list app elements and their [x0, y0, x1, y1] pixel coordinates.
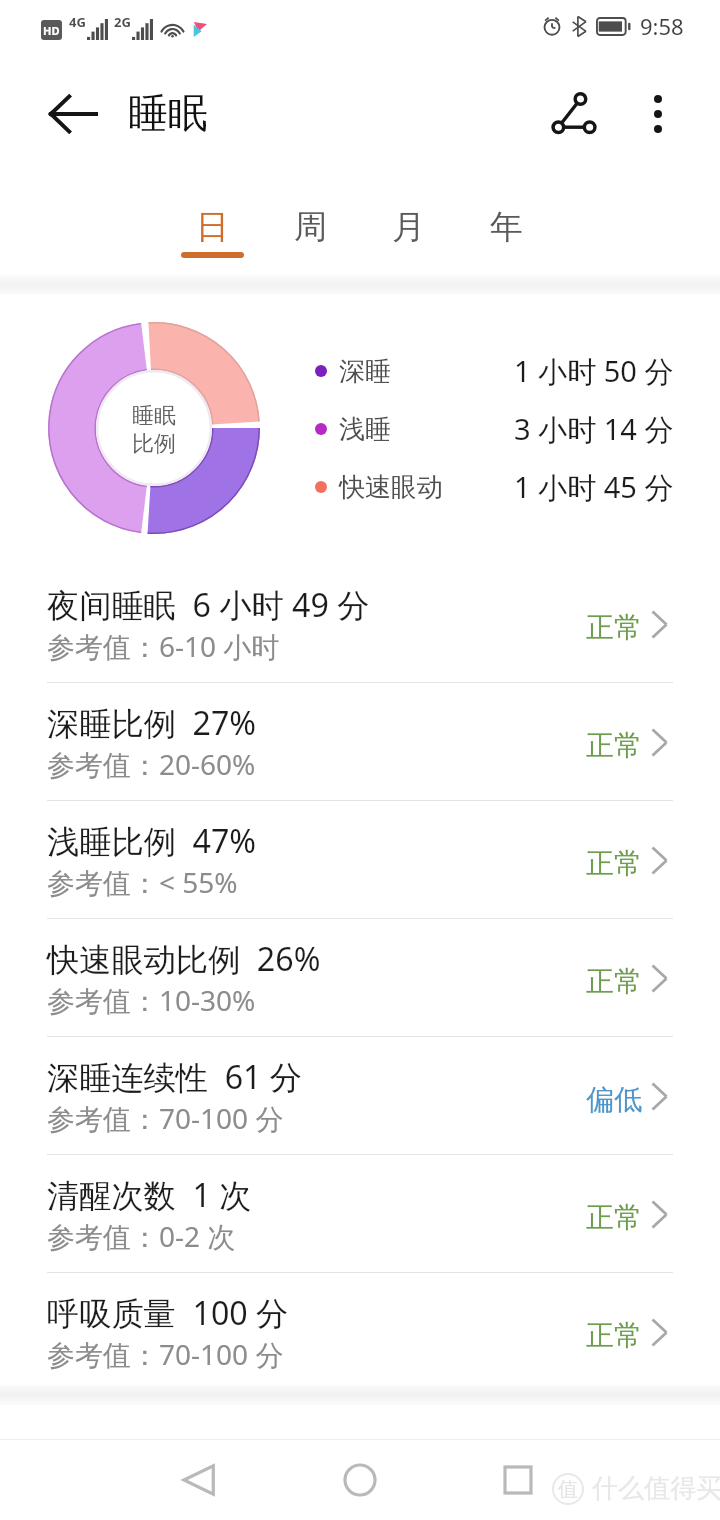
- staticText: 正常: [586, 610, 642, 645]
- staticText: 快速眼动比例 26%: [47, 937, 321, 981]
- staticText: 参考值：< 55%: [47, 863, 238, 901]
- staticText: 偏低: [586, 1082, 642, 1117]
- staticText: 快速眼动: [339, 471, 443, 504]
- button[interactable]: 呼吸质量 100 分: [0, 1273, 720, 1391]
- staticText: 月: [392, 206, 425, 248]
- button[interactable]: 浅睡比例 47%: [0, 801, 720, 919]
- button[interactable]: Back: [171, 1452, 227, 1508]
- button[interactable]: 深睡连续性 61 分: [0, 1037, 720, 1155]
- staticText: 呼吸质量 100 分: [47, 1291, 289, 1335]
- button[interactable]: 快速眼动比例 26%: [0, 919, 720, 1037]
- staticText: 深睡连续性 61 分: [47, 1055, 303, 1099]
- button[interactable]: 深睡比例 27%: [0, 683, 720, 801]
- staticText: 正常: [586, 1200, 642, 1235]
- staticText: 2G: [114, 13, 131, 31]
- button[interactable]: 夜间睡眠 6 小时 49 分: [0, 565, 720, 683]
- staticText: 浅睡比例 47%: [47, 819, 257, 863]
- staticText: 比例: [132, 430, 176, 458]
- staticText: 什么值得买: [592, 1472, 720, 1505]
- staticText: 正常: [586, 728, 642, 763]
- staticText: 睡眠: [128, 88, 208, 138]
- button[interactable]: 年: [457, 172, 555, 276]
- staticText: 参考值：6-10 小时: [47, 627, 280, 665]
- staticText: 清醒次数 1 次: [47, 1173, 252, 1217]
- staticText: 1 小时 45 分: [514, 467, 674, 507]
- staticText: HD: [43, 23, 60, 38]
- staticText: 值: [558, 1477, 578, 1502]
- staticText: 年: [490, 206, 523, 248]
- staticText: 参考值：10-30%: [47, 981, 256, 1019]
- staticText: 1 小时 50 分: [514, 351, 674, 391]
- button[interactable]: Recents: [490, 1452, 546, 1508]
- staticText: 正常: [586, 846, 642, 881]
- button[interactable]: 周: [261, 172, 359, 276]
- button[interactable]: More options: [622, 78, 694, 150]
- staticText: 3 小时 14 分: [514, 409, 674, 449]
- button[interactable]: Home: [332, 1452, 388, 1508]
- button[interactable]: Back: [30, 71, 116, 157]
- staticText: 周: [294, 206, 327, 248]
- staticText: 深睡: [339, 355, 391, 388]
- staticText: 参考值：70-100 分: [47, 1099, 284, 1137]
- button[interactable]: Share: [532, 72, 616, 156]
- staticText: 参考值：20-60%: [47, 745, 256, 783]
- staticText: 正常: [586, 964, 642, 999]
- staticText: 浅睡: [339, 413, 391, 446]
- staticText: 正常: [586, 1318, 642, 1353]
- button[interactable]: 清醒次数 1 次: [0, 1155, 720, 1273]
- staticText: 深睡比例 27%: [47, 701, 257, 745]
- staticText: 9:58: [640, 11, 684, 41]
- staticText: 睡眠: [132, 402, 176, 430]
- staticText: 参考值：70-100 分: [47, 1335, 284, 1373]
- button[interactable]: 月: [359, 172, 457, 276]
- staticText: 日: [196, 206, 229, 248]
- staticText: 夜间睡眠 6 小时 49 分: [47, 583, 370, 627]
- staticText: 4G: [69, 13, 86, 31]
- staticText: 参考值：0-2 次: [47, 1217, 236, 1255]
- button[interactable]: 日: [163, 172, 261, 276]
